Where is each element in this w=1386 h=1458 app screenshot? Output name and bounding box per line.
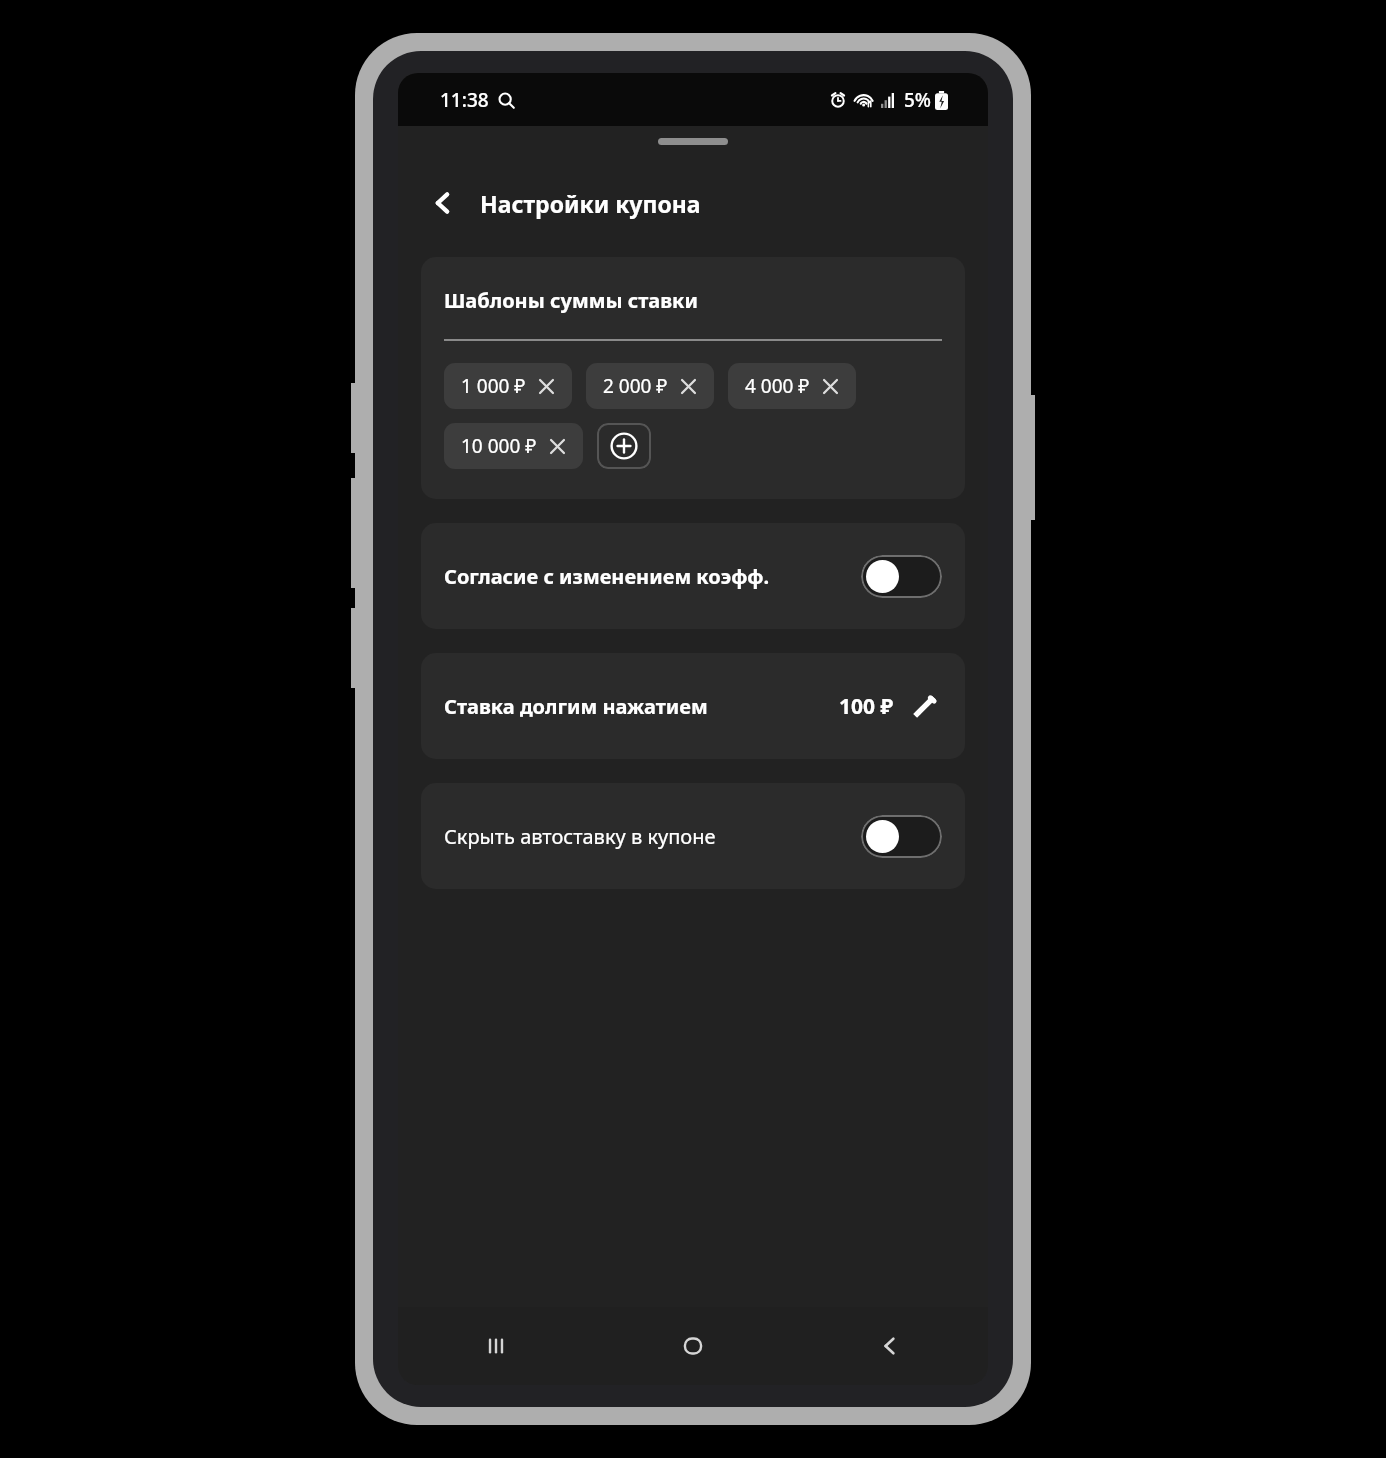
staticText: 10 000 ₽: [461, 433, 537, 459]
staticText: Настройки купона: [480, 188, 701, 219]
button[interactable]: Согласие с изменением коэфф.: [421, 523, 965, 629]
staticText: 4 000 ₽: [745, 373, 810, 399]
staticText: 100 ₽: [839, 692, 894, 721]
button[interactable]: Переключатель: [861, 555, 942, 598]
staticText: 11:38: [440, 87, 489, 113]
staticText: 2 000 ₽: [603, 373, 668, 399]
button[interactable]: Последние приложения: [398, 1307, 594, 1385]
button[interactable]: Скрыть автоставку в купоне: [421, 783, 965, 889]
staticText: Ставка долгим нажатием: [444, 693, 708, 720]
staticText: 5%: [904, 87, 932, 113]
staticText: Шаблоны суммы ставки: [444, 287, 698, 314]
button[interactable]: Переключатель: [861, 815, 942, 858]
button[interactable]: 10 000 ₽: [444, 423, 583, 469]
button[interactable]: Изменить сумму: [908, 689, 942, 723]
button[interactable]: Добавить шаблон: [597, 423, 651, 469]
button[interactable]: Ставка долгим нажатием: [421, 653, 965, 759]
button[interactable]: Домой: [594, 1307, 791, 1385]
staticText: Скрыть автоставку в купоне: [444, 823, 716, 850]
button[interactable]: 2 000 ₽: [586, 363, 714, 409]
button[interactable]: 4 000 ₽: [728, 363, 856, 409]
button[interactable]: 1 000 ₽: [444, 363, 572, 409]
staticText: Согласие с изменением коэфф.: [444, 563, 770, 590]
button[interactable]: Назад: [420, 180, 466, 226]
button[interactable]: Назад: [791, 1307, 988, 1385]
staticText: 1 000 ₽: [461, 373, 526, 399]
